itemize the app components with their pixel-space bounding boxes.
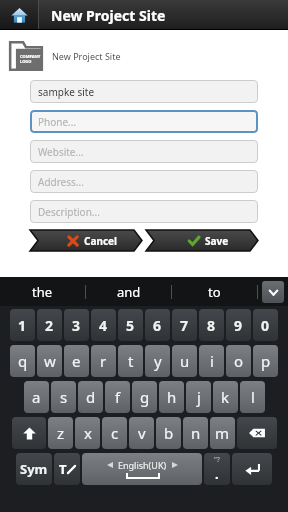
button[interactable]: Home bbox=[0, 0, 38, 30]
button[interactable]: the bbox=[0, 277, 85, 306]
button[interactable]: Backspace bbox=[237, 417, 277, 449]
staticText: and bbox=[117, 283, 141, 301]
button[interactable]: h bbox=[159, 381, 184, 413]
staticText: Phone... bbox=[38, 115, 77, 129]
button[interactable]: Period bbox=[204, 453, 230, 485]
button[interactable]: and bbox=[86, 277, 171, 306]
staticText: d bbox=[86, 387, 96, 407]
button[interactable]: q bbox=[10, 345, 35, 377]
staticText: i bbox=[210, 351, 214, 371]
staticText: 8 bbox=[207, 316, 216, 335]
staticText: l bbox=[251, 387, 255, 407]
staticText: the bbox=[32, 283, 53, 301]
staticText: h bbox=[167, 387, 177, 407]
staticText: Address... bbox=[38, 175, 84, 189]
button[interactable]: More suggestions bbox=[262, 281, 284, 303]
button[interactable]: x bbox=[75, 417, 100, 449]
staticText: LOGO bbox=[20, 59, 32, 64]
button[interactable]: 6 bbox=[145, 309, 170, 341]
button[interactable]: k bbox=[213, 381, 238, 413]
staticText: w bbox=[44, 351, 56, 371]
button[interactable]: to bbox=[172, 277, 257, 306]
button[interactable]: Save bbox=[146, 230, 258, 251]
button[interactable]: u bbox=[172, 345, 197, 377]
button[interactable]: b bbox=[156, 417, 181, 449]
staticText: m bbox=[215, 423, 230, 443]
button[interactable]: Cancel bbox=[30, 230, 142, 251]
staticText: y bbox=[154, 351, 162, 371]
staticText: p bbox=[261, 351, 271, 371]
button[interactable]: Sym bbox=[16, 453, 52, 485]
button[interactable]: 5 bbox=[118, 309, 143, 341]
button[interactable]: y bbox=[145, 345, 170, 377]
button[interactable]: a bbox=[24, 381, 49, 413]
staticText: 2 bbox=[45, 316, 54, 335]
staticText: n bbox=[191, 423, 201, 443]
button[interactable]: 1 bbox=[10, 309, 35, 341]
button[interactable]: z bbox=[48, 417, 73, 449]
staticText: 9 bbox=[234, 316, 243, 335]
staticText: English(UK) bbox=[118, 459, 167, 471]
button[interactable]: l bbox=[240, 381, 265, 413]
button[interactable]: 3 bbox=[64, 309, 89, 341]
button[interactable]: p bbox=[253, 345, 278, 377]
staticText: 6 bbox=[153, 316, 162, 335]
staticText: New Project Site bbox=[51, 6, 166, 25]
button[interactable]: 0 bbox=[253, 309, 278, 341]
staticText: 4 bbox=[99, 316, 108, 335]
button[interactable]: sampke site bbox=[30, 80, 258, 103]
staticText: e bbox=[72, 351, 81, 371]
staticText: c bbox=[111, 423, 119, 443]
staticText: 5 bbox=[126, 316, 135, 335]
button[interactable]: 2 bbox=[37, 309, 62, 341]
button[interactable]: j bbox=[186, 381, 211, 413]
button[interactable]: c bbox=[102, 417, 127, 449]
staticText: Website... bbox=[38, 145, 84, 159]
staticText: u bbox=[180, 351, 190, 371]
button[interactable]: n bbox=[183, 417, 208, 449]
button[interactable]: s bbox=[51, 381, 76, 413]
button[interactable]: o bbox=[226, 345, 251, 377]
button[interactable]: e bbox=[64, 345, 89, 377]
staticText: T bbox=[59, 460, 67, 478]
staticText: 3 bbox=[72, 316, 81, 335]
button[interactable]: v bbox=[129, 417, 154, 449]
button[interactable]: Space bbox=[82, 453, 202, 485]
staticText: . bbox=[215, 465, 219, 483]
staticText: Sym bbox=[20, 460, 48, 478]
button[interactable]: m bbox=[210, 417, 235, 449]
staticText: k bbox=[221, 387, 230, 407]
button[interactable]: 4 bbox=[91, 309, 116, 341]
button[interactable]: w bbox=[37, 345, 62, 377]
staticText: to bbox=[208, 283, 221, 301]
button[interactable]: Shift bbox=[12, 417, 46, 449]
staticText: COMPANY bbox=[20, 54, 41, 59]
button[interactable]: Website... bbox=[30, 140, 258, 163]
button[interactable]: d bbox=[78, 381, 103, 413]
staticText: b bbox=[164, 423, 174, 443]
button[interactable]: Input method bbox=[54, 453, 80, 485]
staticText: v bbox=[138, 423, 146, 443]
staticText: o bbox=[234, 351, 244, 371]
button[interactable]: 8 bbox=[199, 309, 224, 341]
staticText: z bbox=[57, 423, 65, 443]
staticText: 1 bbox=[18, 316, 27, 335]
button[interactable]: g bbox=[132, 381, 157, 413]
button[interactable]: Enter bbox=[232, 453, 272, 485]
staticText: a bbox=[32, 387, 41, 407]
button[interactable]: r bbox=[91, 345, 116, 377]
button[interactable]: t bbox=[118, 345, 143, 377]
staticText: Cancel bbox=[84, 234, 118, 248]
button[interactable]: 9 bbox=[226, 309, 251, 341]
staticText: Description... bbox=[38, 205, 100, 219]
button[interactable]: f bbox=[105, 381, 130, 413]
staticText: q bbox=[18, 351, 28, 371]
button[interactable]: Address... bbox=[30, 170, 258, 193]
staticText: Save bbox=[205, 234, 229, 248]
button[interactable]: Description... bbox=[30, 200, 258, 223]
button[interactable]: Phone... bbox=[30, 110, 258, 133]
button[interactable]: 7 bbox=[172, 309, 197, 341]
staticText: sampke site bbox=[38, 85, 95, 99]
staticText: f bbox=[115, 387, 121, 407]
button[interactable]: i bbox=[199, 345, 224, 377]
